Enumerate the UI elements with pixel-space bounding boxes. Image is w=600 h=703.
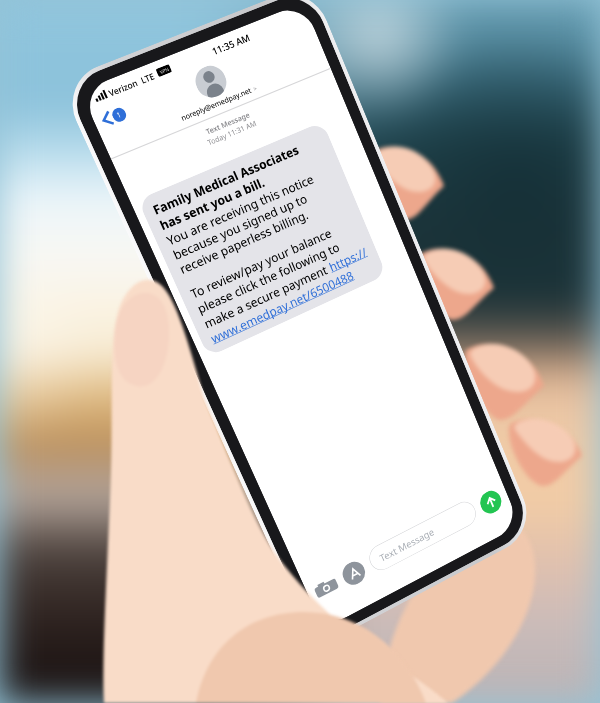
staticText: 11:35 AM	[210, 30, 252, 57]
staticText: make a secure payment	[201, 260, 333, 331]
staticText: www.emedpay.net/6500488	[208, 267, 356, 346]
staticText: You are receiving this notice because yo…	[164, 170, 328, 277]
staticText: Family Medical Associates	[150, 141, 301, 218]
staticText: Text Message	[114, 74, 337, 175]
button[interactable]: Camera	[311, 572, 341, 603]
button[interactable]: Send	[477, 487, 505, 517]
staticText: please click the following to	[194, 238, 342, 317]
staticText: >	[252, 84, 259, 93]
staticText: Today 11:31 AM	[118, 84, 341, 185]
staticText: LTE	[139, 69, 157, 86]
button[interactable]: App Store	[339, 558, 369, 589]
staticText: To review/pay your balance	[188, 224, 334, 302]
staticText: 1	[115, 109, 124, 121]
button[interactable]: Back, 1 unread	[100, 105, 128, 128]
staticText: VPN	[159, 66, 170, 75]
button[interactable]: Text Message	[365, 497, 480, 575]
staticText: Text Message	[377, 525, 436, 565]
staticText: has sent you a bill.	[157, 173, 267, 233]
staticText: Verizon	[106, 76, 140, 99]
staticText: https://	[326, 243, 369, 275]
button[interactable]: Family Medical Associates	[150, 132, 375, 346]
staticText: noreply@emedpay.net	[180, 85, 254, 124]
